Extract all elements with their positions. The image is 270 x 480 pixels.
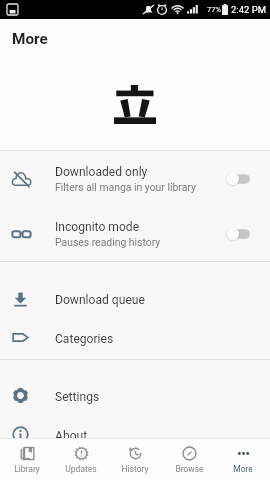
button[interactable]: Settings xyxy=(0,378,270,417)
button[interactable]: History xyxy=(108,439,162,480)
staticText: 77% xyxy=(207,5,221,14)
staticText: Categories xyxy=(55,332,114,346)
staticText: More xyxy=(12,30,48,48)
button[interactable]: Downloaded only xyxy=(0,151,270,206)
button[interactable]: About xyxy=(0,417,270,456)
button[interactable]: Categories xyxy=(0,320,270,359)
button[interactable]: Library xyxy=(0,439,54,480)
staticText: Downloaded only xyxy=(55,165,148,179)
staticText: Library xyxy=(14,464,40,474)
button[interactable]: Browse xyxy=(162,439,216,480)
staticText: Incognito mode xyxy=(55,220,140,234)
staticText: History xyxy=(121,464,149,474)
staticText: More xyxy=(233,464,253,474)
button[interactable]: More xyxy=(216,439,270,480)
button[interactable]: Incognito mode xyxy=(0,206,270,261)
button[interactable]: Updates xyxy=(54,439,108,480)
staticText: Filters all manga in your library xyxy=(55,181,196,193)
staticText: Settings xyxy=(55,390,100,404)
staticText: Updates xyxy=(65,464,97,474)
staticText: About xyxy=(55,429,88,443)
button[interactable]: Download queue xyxy=(0,281,270,320)
staticText: Pauses reading history xyxy=(55,236,161,248)
staticText: 2:42 PM xyxy=(231,4,266,15)
staticText: Download queue xyxy=(55,293,145,307)
staticText: Browse xyxy=(175,464,204,474)
